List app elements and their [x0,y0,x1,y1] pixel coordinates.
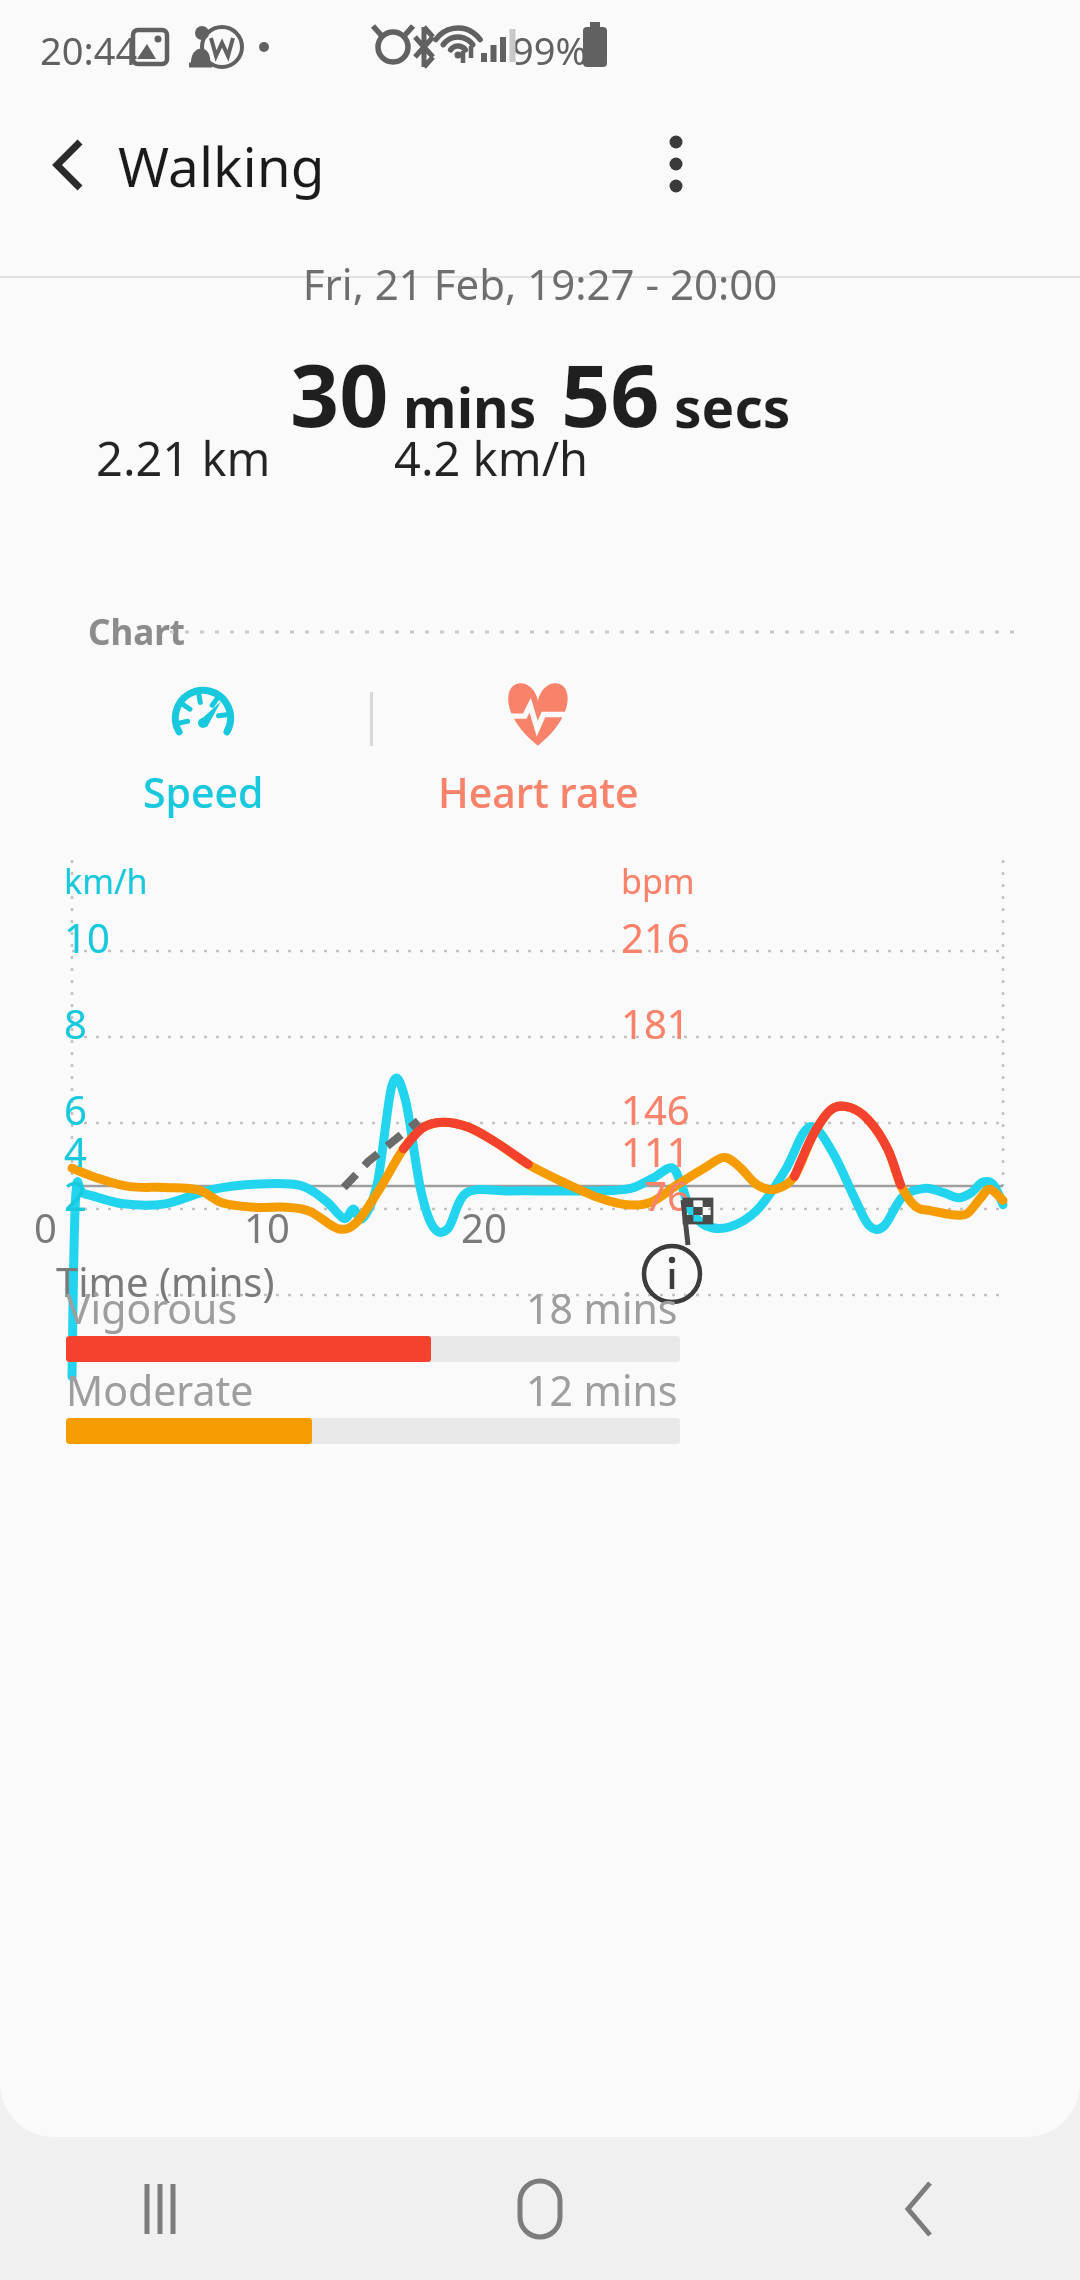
staticText: 4 [64,1124,87,1178]
staticText: 99% [512,24,588,76]
staticText: 18 mins [526,1280,678,1336]
staticText: Chart [88,608,186,656]
staticText: 181 [621,996,690,1050]
staticText: Speed [143,764,264,820]
staticText: Walking [118,128,325,203]
button[interactable]: Back [28,125,108,205]
staticText: 0 [34,1200,57,1254]
staticText: km/h [64,858,148,904]
staticText: 6 [64,1082,87,1136]
staticText: 20:44 [40,24,138,76]
staticText: 12 mins [526,1362,678,1418]
staticText: Vigorous [66,1280,238,1336]
staticText: 216 [621,910,690,964]
staticText: Moderate [66,1362,254,1418]
button[interactable]: Information [640,1242,704,1306]
staticText: 10 [64,910,110,964]
staticText: 4.2 km/h [394,426,589,490]
button[interactable]: Recents [118,2167,202,2251]
staticText: 111 [621,1124,690,1178]
button[interactable]: More options [636,124,716,204]
staticText: bpm [621,858,695,904]
button[interactable]: Finish [670,1196,720,1246]
button[interactable]: Home [498,2167,582,2251]
staticText: 76 [644,1168,690,1222]
staticText: 2.21 km [96,426,271,490]
staticText: 30 [290,335,389,452]
button[interactable]: Moderate [0,1362,1080,1442]
button[interactable]: Back [878,2167,962,2251]
staticText: 8 [64,996,87,1050]
staticText: 56 [561,335,660,452]
staticText: 2 [64,1168,87,1222]
staticText: Heart rate [438,764,639,820]
button[interactable]: Speed [110,674,296,820]
staticText: 20 [461,1200,507,1254]
button[interactable]: Vigorous [0,1280,1080,1360]
staticText: 146 [621,1082,690,1136]
staticText: Fri, 21 Feb, 19:27 - 20:00 [0,255,1080,312]
button[interactable]: Heart rate [420,674,656,820]
staticText: 10 [244,1200,290,1254]
staticText: Time (mins) [56,1254,275,1308]
staticText: secs [674,369,791,444]
staticText: mins [403,369,537,444]
